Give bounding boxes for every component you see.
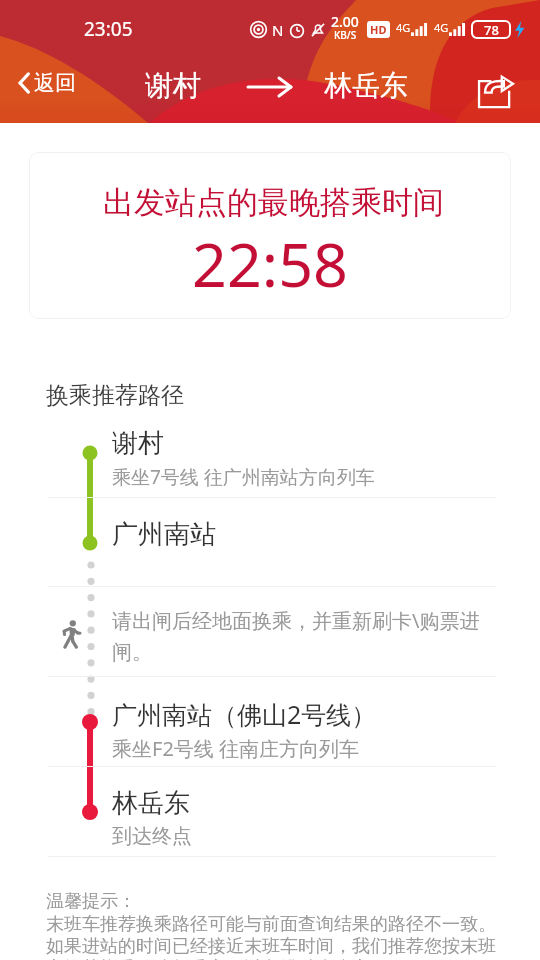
staticText: 4G (396, 20, 411, 35)
staticText: 乘坐F2号线 往南庄方向列车 (112, 735, 360, 762)
button[interactable]: 返回 (14, 70, 76, 96)
staticText: 广州南站（佛山2号线） (112, 697, 377, 731)
staticText: 4G (434, 20, 449, 35)
button[interactable]: Share (471, 68, 519, 116)
staticText: 2.00 (331, 12, 359, 31)
button[interactable]: 广州南站 (112, 518, 216, 551)
staticText: 谢村 (145, 68, 201, 103)
staticText: 乘坐7号线 往广州南站方向列车 (112, 464, 375, 490)
staticText: KB/S (334, 28, 357, 42)
staticText: 末班车推荐换乘路径可能与前面查询结果的路径不一致。如果进站的时间已经接近末班车时… (46, 913, 502, 960)
staticText: 出发站点的最晚搭乘时间 (103, 183, 444, 222)
staticText: N (272, 20, 284, 40)
staticText: 温馨提示： (46, 890, 136, 913)
staticText: 22:58 (192, 222, 348, 305)
staticText: HD (370, 22, 387, 37)
button[interactable]: 广州南站（佛山2号线） (112, 697, 377, 762)
staticText: 谢村 (112, 427, 164, 460)
staticText: 78 (484, 21, 499, 39)
staticText: 返回 (34, 70, 76, 96)
button[interactable]: 林岳东 (112, 787, 192, 849)
staticText: 到达终点 (112, 824, 192, 849)
staticText: 换乘推荐路径 (46, 381, 184, 410)
staticText: 林岳东 (324, 68, 408, 103)
staticText: 请出闸后经地面换乘，并重新刷卡\购票进闸。 (112, 607, 498, 665)
staticText: 广州南站 (112, 518, 216, 551)
button[interactable]: 谢村 (112, 427, 375, 490)
staticText: 林岳东 (112, 787, 190, 820)
staticText: 23:05 (84, 16, 133, 42)
